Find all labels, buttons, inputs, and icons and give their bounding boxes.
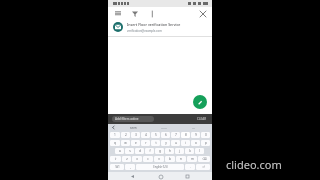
- button[interactable]: m: [187, 156, 197, 162]
- button[interactable]: Back: [129, 173, 136, 180]
- button[interactable]: ⌫: [198, 156, 210, 162]
- staticText: r: [145, 141, 147, 145]
- button[interactable]: c: [143, 156, 153, 162]
- staticText: 2: [125, 133, 127, 137]
- staticText: a: [119, 149, 121, 153]
- staticText: 4: [145, 133, 147, 137]
- staticText: ⇧: [114, 157, 117, 161]
- staticText: s: [129, 149, 131, 153]
- button[interactable]: e: [131, 140, 140, 146]
- button[interactable]: 5: [151, 132, 160, 138]
- button[interactable]: 1: [110, 132, 120, 138]
- staticText: 5: [155, 133, 157, 137]
- button[interactable]: y: [161, 140, 170, 146]
- staticText: q: [114, 141, 116, 145]
- button[interactable]: 6: [161, 132, 170, 138]
- button[interactable]: a: [115, 148, 124, 154]
- staticText: k: [189, 149, 191, 153]
- button[interactable]: Add filters active: [112, 116, 154, 122]
- button[interactable]: q: [110, 140, 120, 146]
- button[interactable]: o: [191, 140, 200, 146]
- staticText: p: [205, 141, 207, 145]
- button[interactable]: i: [181, 140, 190, 146]
- button[interactable]: f: [145, 148, 154, 154]
- button[interactable]: x: [132, 156, 142, 162]
- staticText: verification@example.com: [127, 29, 162, 33]
- button[interactable]: 7: [171, 132, 180, 138]
- button[interactable]: d: [135, 148, 144, 154]
- staticText: 3: [135, 133, 137, 137]
- button[interactable]: r: [141, 140, 150, 146]
- button[interactable]: 8: [181, 132, 190, 138]
- staticText: Add filters active: [115, 117, 139, 121]
- button[interactable]: z: [122, 156, 131, 162]
- button[interactable]: Compose: [193, 95, 207, 109]
- button[interactable]: ,: [125, 164, 135, 170]
- staticText: Insert Floor verification Service: [127, 22, 181, 27]
- button[interactable]: 9: [191, 132, 200, 138]
- staticText: e: [135, 141, 137, 145]
- button[interactable]: Close: [198, 9, 207, 18]
- button[interactable]: k: [185, 148, 194, 154]
- staticText: .: [190, 165, 191, 169]
- button[interactable]: j: [175, 148, 184, 154]
- staticText: CLEAR: [197, 117, 207, 121]
- button[interactable]: Attach: [147, 9, 156, 18]
- staticText: ⏎: [202, 165, 205, 169]
- button[interactable]: Insert Floor verification Service: [108, 19, 212, 37]
- staticText: f: [149, 149, 151, 153]
- staticText: 0: [205, 133, 207, 137]
- staticText: seen: [130, 126, 137, 130]
- staticText: g: [159, 149, 161, 153]
- staticText: c: [147, 157, 149, 161]
- staticText: English (US): [153, 165, 168, 169]
- button[interactable]: ⏎: [196, 164, 210, 170]
- button[interactable]: .: [185, 164, 195, 170]
- staticText: !#1: [115, 165, 120, 169]
- button[interactable]: !#1: [110, 164, 124, 170]
- staticText: —: [192, 126, 196, 130]
- button[interactable]: b: [165, 156, 175, 162]
- button[interactable]: 2: [121, 132, 130, 138]
- button[interactable]: t: [151, 140, 160, 146]
- staticText: m: [191, 157, 194, 161]
- button[interactable]: Previous: [111, 125, 116, 130]
- staticText: w: [124, 141, 127, 145]
- staticText: u: [175, 141, 177, 145]
- button[interactable]: 3: [131, 132, 140, 138]
- staticText: 1: [114, 133, 116, 137]
- button[interactable]: Menu: [113, 9, 122, 18]
- button[interactable]: CLEAR: [197, 117, 207, 121]
- staticText: i: [185, 141, 186, 145]
- button[interactable]: h: [165, 148, 174, 154]
- button[interactable]: g: [155, 148, 164, 154]
- staticText: ⌫: [202, 157, 207, 161]
- staticText: o: [195, 141, 197, 145]
- button[interactable]: u: [171, 140, 180, 146]
- button[interactable]: v: [154, 156, 164, 162]
- staticText: y: [165, 141, 167, 145]
- staticText: n: [180, 157, 182, 161]
- button[interactable]: w: [121, 140, 130, 146]
- staticText: clideo.com: [226, 157, 282, 172]
- button[interactable]: ⇧: [110, 156, 121, 162]
- button[interactable]: p: [201, 140, 210, 146]
- staticText: d: [139, 149, 141, 153]
- button[interactable]: 4: [141, 132, 150, 138]
- staticText: l: [199, 149, 200, 153]
- staticText: 9: [195, 133, 197, 137]
- staticText: 6: [165, 133, 167, 137]
- button[interactable]: n: [176, 156, 186, 162]
- button[interactable]: s: [125, 148, 134, 154]
- button[interactable]: l: [195, 148, 204, 154]
- staticText: z: [126, 157, 128, 161]
- button[interactable]: 0: [201, 132, 210, 138]
- staticText: ——: [161, 126, 168, 130]
- button[interactable]: English (US): [136, 164, 184, 170]
- staticText: h: [169, 149, 171, 153]
- button[interactable]: Filter: [130, 9, 139, 18]
- button[interactable]: Recents: [184, 173, 191, 180]
- button[interactable]: Home: [157, 173, 164, 180]
- staticText: x: [136, 157, 138, 161]
- staticText: t: [155, 141, 157, 145]
